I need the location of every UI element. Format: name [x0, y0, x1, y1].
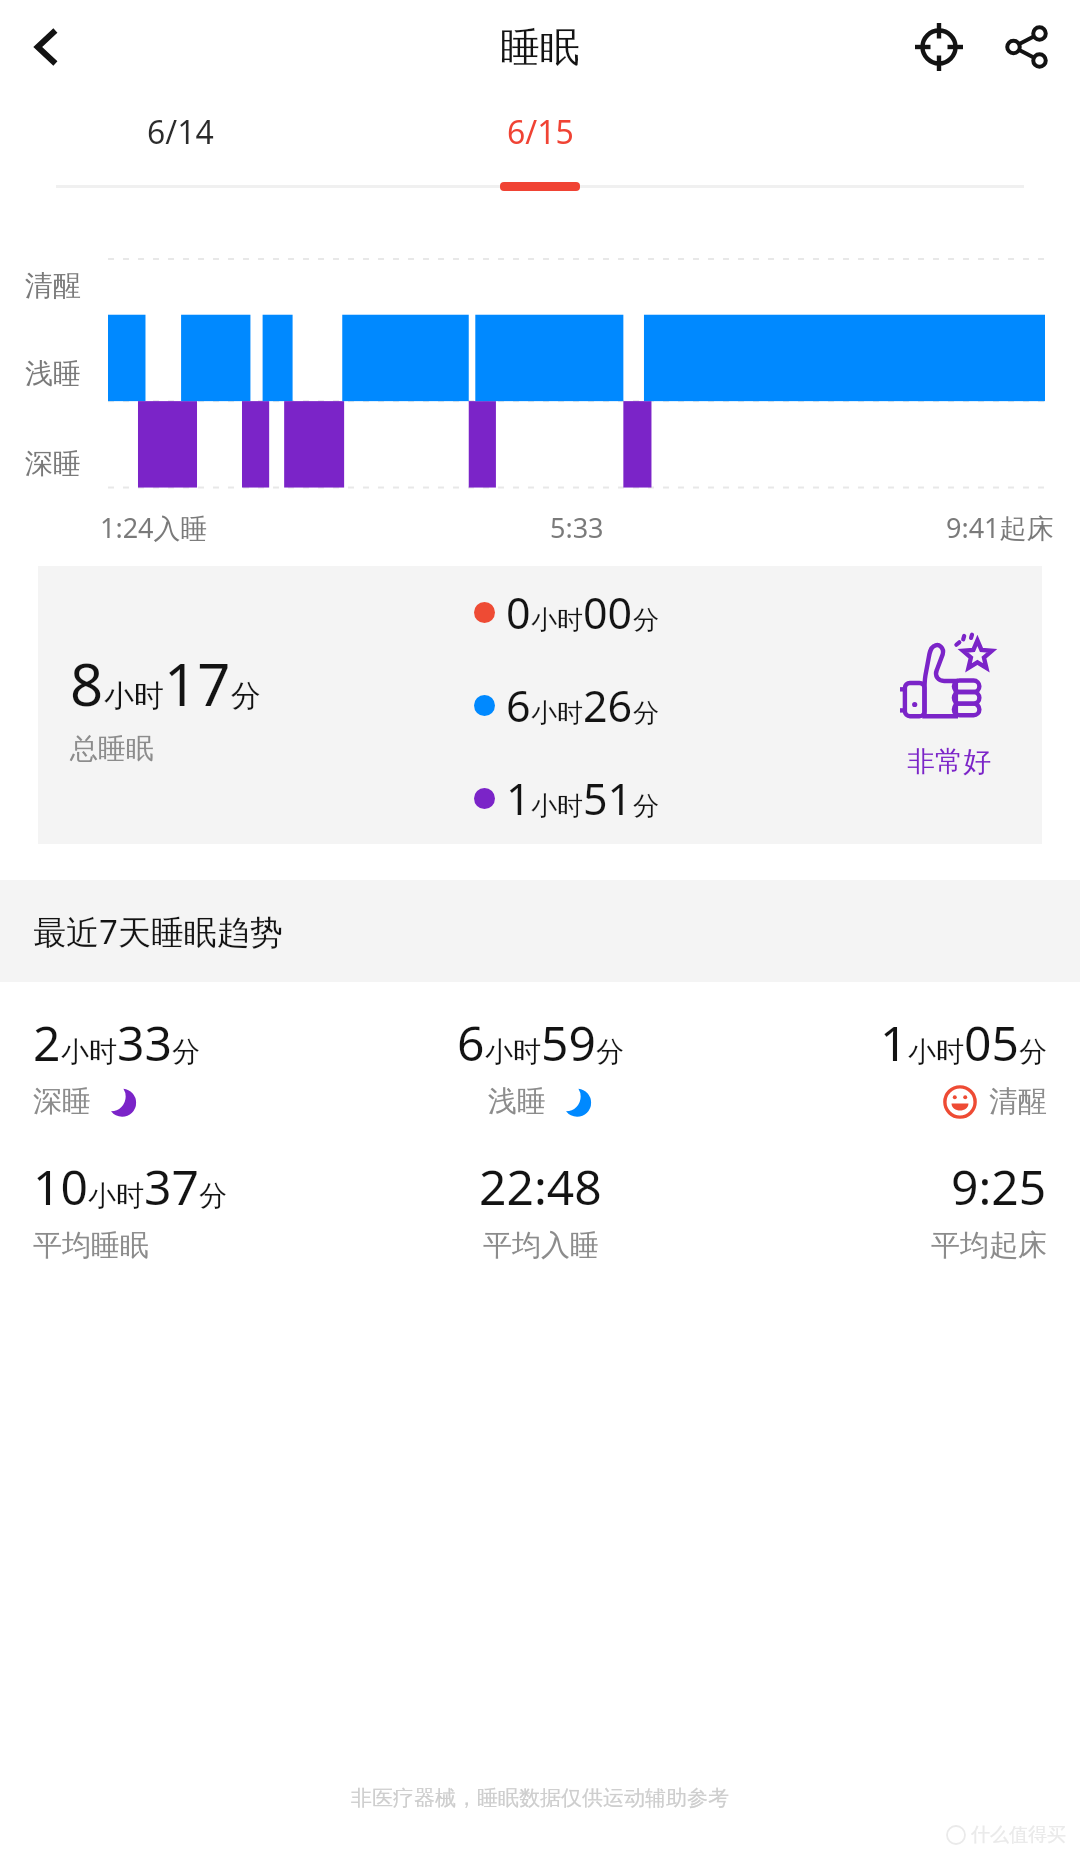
- staticText: 8: [70, 644, 104, 723]
- staticText: 非医疗器械，睡眠数据仅供运动辅助参考: [351, 1785, 729, 1811]
- staticText: 分: [1019, 1034, 1047, 1069]
- staticText: 51: [583, 769, 633, 828]
- staticText: 17: [164, 644, 231, 723]
- staticText: 清醒: [25, 268, 81, 303]
- staticText: 小时: [485, 1034, 541, 1069]
- staticText: 0: [506, 583, 531, 642]
- staticText: 5:33: [550, 509, 604, 546]
- staticText: 最近7天睡眠趋势: [33, 909, 283, 954]
- staticText: 浅睡: [488, 1083, 546, 1120]
- staticText: 00: [583, 583, 633, 642]
- staticText: 什么值得买: [971, 1823, 1066, 1847]
- staticText: 小时: [88, 1178, 144, 1213]
- staticText: 1:24入睡: [100, 509, 208, 546]
- staticText: 非常好: [907, 744, 991, 779]
- staticText: 深睡: [33, 1083, 91, 1120]
- staticText: 6: [457, 1010, 485, 1075]
- button[interactable]: Share: [990, 10, 1064, 84]
- staticText: 22:48: [479, 1154, 602, 1219]
- staticText: 分: [596, 1034, 624, 1069]
- staticText: 小时: [531, 604, 583, 637]
- staticText: 小时: [531, 790, 583, 823]
- staticText: 10: [33, 1154, 88, 1219]
- staticText: 分: [633, 790, 659, 823]
- staticText: 6/15: [507, 110, 574, 154]
- staticText: 6/14: [147, 110, 214, 154]
- staticText: 分: [633, 604, 659, 637]
- staticText: 2: [33, 1010, 61, 1075]
- button[interactable]: Target: [902, 10, 976, 84]
- staticText: 小时: [104, 677, 164, 715]
- button[interactable]: Back: [12, 13, 80, 81]
- staticText: 分: [199, 1178, 227, 1213]
- staticText: 59: [541, 1010, 596, 1075]
- staticText: 浅睡: [25, 356, 81, 391]
- button[interactable]: 8: [38, 566, 1042, 844]
- staticText: 分: [231, 677, 261, 715]
- staticText: 清醒: [989, 1083, 1047, 1120]
- staticText: 1: [506, 769, 531, 828]
- staticText: 睡眠: [500, 22, 580, 72]
- staticText: 33: [117, 1010, 172, 1075]
- staticText: 小时: [531, 697, 583, 730]
- staticText: 1: [880, 1010, 908, 1075]
- staticText: 37: [144, 1154, 199, 1219]
- staticText: 05: [964, 1010, 1019, 1075]
- staticText: 分: [633, 697, 659, 730]
- staticText: 6: [506, 676, 531, 735]
- staticText: 总睡眠: [70, 731, 154, 766]
- button[interactable]: 6/14: [0, 94, 360, 202]
- staticText: 小时: [908, 1034, 964, 1069]
- staticText: 9:25: [951, 1154, 1047, 1219]
- staticText: 分: [172, 1034, 200, 1069]
- staticText: 小时: [61, 1034, 117, 1069]
- staticText: 9:41起床: [946, 509, 1054, 546]
- staticText: 平均入睡: [483, 1227, 599, 1264]
- staticText: 平均起床: [931, 1227, 1047, 1264]
- staticText: 深睡: [25, 446, 81, 481]
- staticText: 平均睡眠: [33, 1227, 149, 1264]
- staticText: 26: [583, 676, 633, 735]
- button[interactable]: 6/15: [360, 94, 720, 202]
